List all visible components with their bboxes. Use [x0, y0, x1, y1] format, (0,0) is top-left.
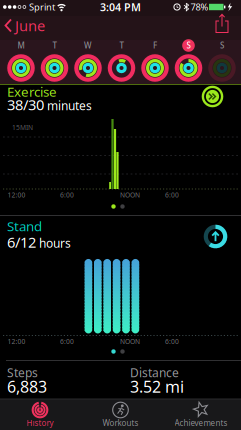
staticText: Exercise: [7, 83, 57, 100]
staticText: 6:00: [60, 191, 74, 199]
staticText: hours: [39, 235, 71, 251]
button[interactable]: S: [205, 38, 239, 84]
staticText: 3:04 PM: [100, 0, 141, 14]
staticText: S: [186, 40, 190, 51]
staticText: Distance: [130, 364, 179, 380]
staticText: W: [84, 40, 92, 51]
staticText: Stand: [7, 217, 42, 235]
staticText: 15MIN: [12, 123, 33, 132]
staticText: 78%: [190, 1, 208, 13]
staticText: 6:00: [60, 337, 74, 346]
staticText: 6:00: [165, 337, 179, 346]
staticText: NOON: [120, 191, 140, 199]
button[interactable]: History: [0, 399, 80, 430]
staticText: Steps: [7, 364, 38, 380]
staticText: History: [26, 418, 53, 428]
staticText: 3.52 mi: [130, 376, 184, 397]
button[interactable]: M: [4, 38, 38, 84]
staticText: Sprint: [29, 1, 55, 13]
staticText: F: [153, 40, 157, 51]
staticText: 12:00: [7, 191, 25, 199]
staticText: NOON: [120, 337, 140, 346]
staticText: S: [220, 40, 224, 51]
button[interactable]: T: [105, 38, 138, 84]
staticText: 6,883: [7, 376, 47, 397]
staticText: June: [15, 16, 45, 35]
button[interactable]: W: [71, 38, 105, 84]
button[interactable]: Achievements: [161, 399, 241, 430]
button[interactable]: T: [38, 38, 71, 84]
staticText: Achievements: [174, 418, 227, 428]
staticText: 12:00: [7, 337, 25, 346]
staticText: 6:00: [165, 191, 179, 199]
button[interactable]: F: [138, 38, 172, 84]
staticText: M: [17, 40, 24, 51]
staticText: T: [119, 40, 123, 51]
button[interactable]: S: [172, 38, 205, 84]
staticText: T: [52, 40, 56, 51]
staticText: 38/30: [7, 95, 44, 114]
staticText: 6/12: [7, 232, 36, 252]
staticText: Workouts: [102, 418, 138, 428]
staticText: minutes: [47, 98, 92, 113]
button[interactable]: June: [0, 10, 50, 40]
button[interactable]: [209, 11, 235, 37]
button[interactable]: Workouts: [80, 399, 160, 430]
